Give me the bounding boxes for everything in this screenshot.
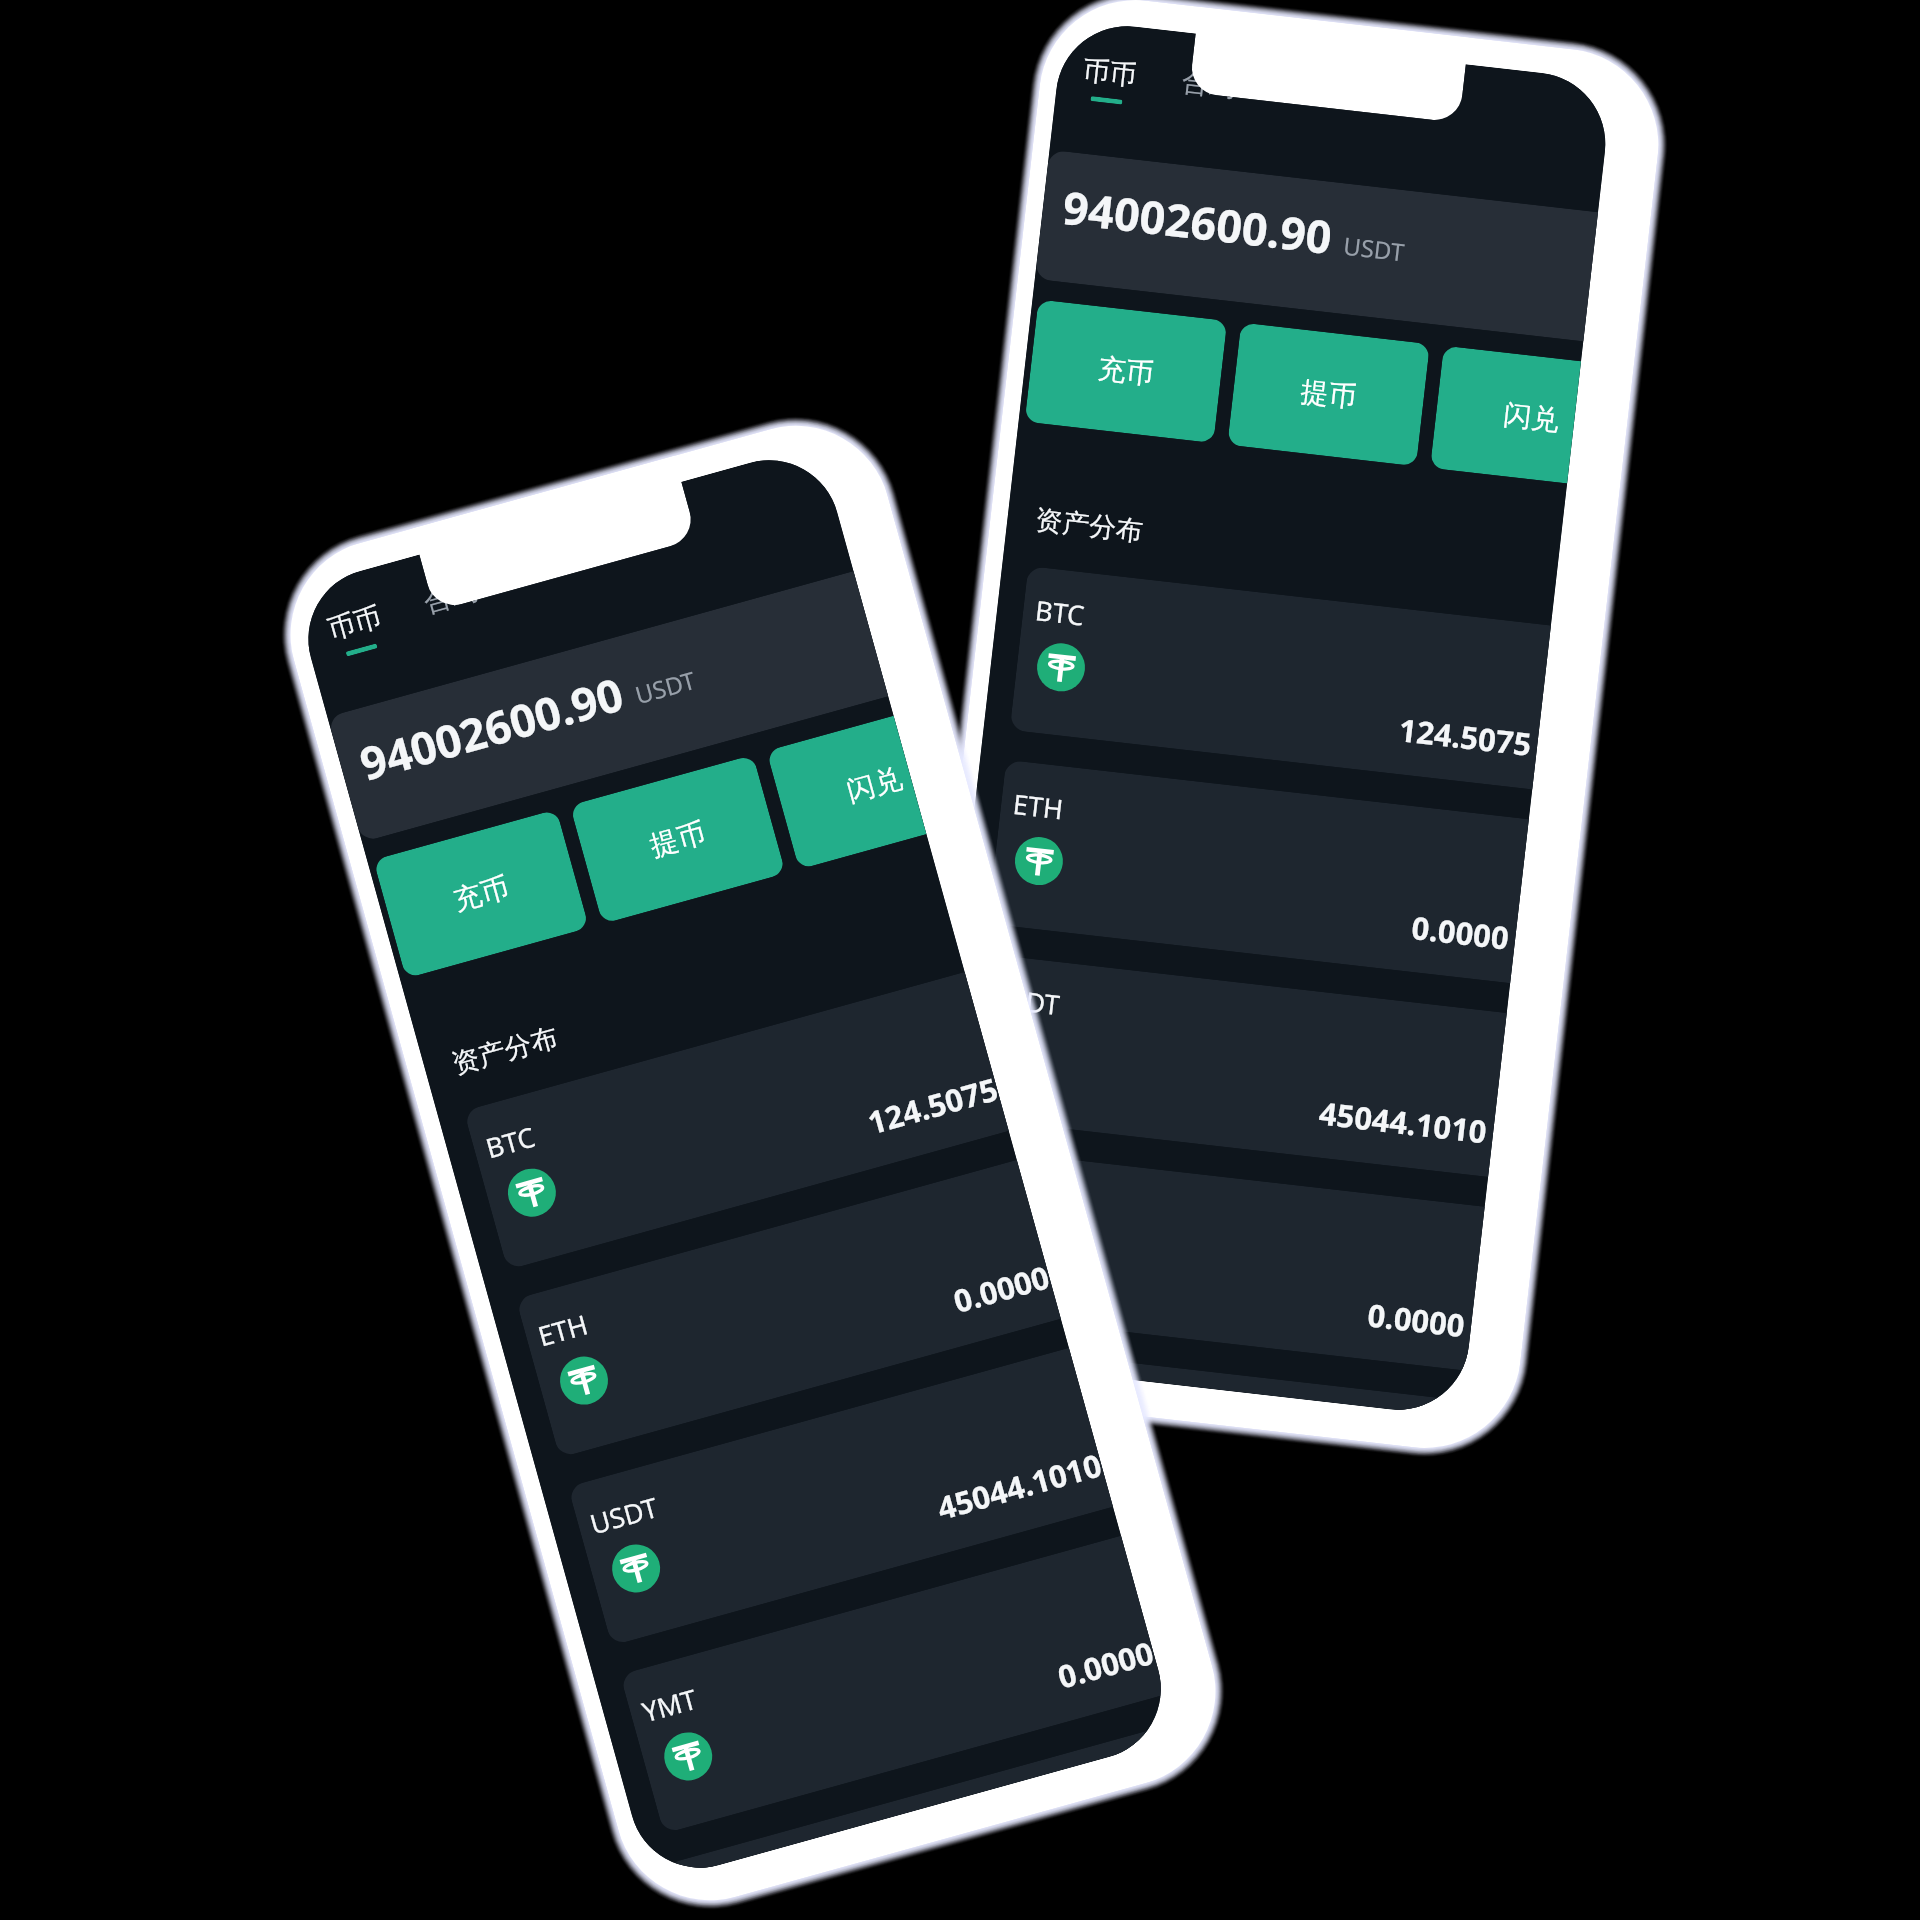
staticText: 币币 xyxy=(324,600,385,647)
staticText: 94002600.90 xyxy=(1060,176,1336,267)
staticText: 124.5075 xyxy=(1397,708,1534,765)
button[interactable]: EOS xyxy=(938,1341,1462,1417)
staticText: 45044.1010 xyxy=(1317,1092,1490,1152)
other: Tether token xyxy=(1034,641,1087,694)
staticText: ETH xyxy=(534,1305,593,1354)
staticText: YMT xyxy=(967,1172,1026,1215)
button[interactable]: 充币 xyxy=(373,809,589,978)
staticText: 币币 xyxy=(1081,53,1138,93)
staticText: BTC xyxy=(1033,591,1087,634)
button[interactable]: BTC xyxy=(1010,566,1551,789)
staticText: YMT xyxy=(638,1680,701,1730)
staticText: 充币 xyxy=(449,869,513,918)
button[interactable]: USDT xyxy=(965,953,1507,1177)
button[interactable]: 合约 xyxy=(1178,64,1240,104)
staticText: 124.5075 xyxy=(863,1067,1002,1143)
button[interactable]: 币币 xyxy=(322,599,390,660)
button[interactable]: 币币 xyxy=(1077,53,1140,106)
staticText: BTC xyxy=(481,1117,540,1166)
button[interactable]: 94002600.90 xyxy=(327,571,888,842)
other: Tether token xyxy=(990,1028,1043,1081)
staticText: 0.0000 xyxy=(1409,906,1512,959)
staticText: 45044.1010 xyxy=(932,1443,1107,1529)
staticText: 提币 xyxy=(646,815,709,864)
button[interactable]: USDT xyxy=(568,1348,1113,1646)
button[interactable]: 充币 xyxy=(1025,299,1227,443)
staticText: 资产分布 xyxy=(1034,503,1145,549)
staticText: 闪兑 xyxy=(1501,397,1561,438)
other: Tether token xyxy=(554,1351,614,1410)
staticText: 0.0000 xyxy=(949,1255,1054,1322)
staticText: USDT xyxy=(586,1488,662,1542)
button[interactable]: 提币 xyxy=(1227,322,1430,466)
button[interactable]: 闪兑 xyxy=(766,716,926,869)
other: Tether token xyxy=(1012,834,1065,888)
staticText: USDT xyxy=(989,979,1062,1023)
staticText: 94002600.90 xyxy=(353,662,630,794)
staticText: 充币 xyxy=(1096,351,1156,392)
button[interactable]: EOS xyxy=(672,1724,1177,1877)
other: Tether token xyxy=(502,1163,561,1222)
button[interactable]: YMT xyxy=(943,1147,1485,1371)
button[interactable]: 94002600.90 xyxy=(1035,150,1598,341)
staticText: 闪兑 xyxy=(843,760,906,809)
other: Tether token xyxy=(968,1222,1021,1275)
staticText: 0.0000 xyxy=(1365,1293,1467,1346)
button[interactable]: 提币 xyxy=(570,755,786,924)
staticText: USDT xyxy=(631,663,699,711)
button[interactable]: BTC xyxy=(464,972,1009,1270)
staticText: ETH xyxy=(1011,785,1066,827)
staticText: 0.0000 xyxy=(1053,1631,1159,1698)
button[interactable]: ETH xyxy=(987,760,1529,983)
staticText: 合约 xyxy=(420,573,481,620)
button[interactable]: 闪兑 xyxy=(1430,346,1581,483)
other: Tether token xyxy=(659,1727,718,1786)
staticText: USDT xyxy=(1342,229,1406,268)
button[interactable]: 合约 xyxy=(418,573,483,621)
other: Tether token xyxy=(607,1539,666,1598)
button[interactable]: YMT xyxy=(620,1536,1165,1834)
staticText: 提币 xyxy=(1299,374,1358,415)
staticText: 合约 xyxy=(1180,64,1238,104)
staticText: 资产分布 xyxy=(448,1020,562,1081)
button[interactable]: ETH xyxy=(516,1160,1061,1458)
